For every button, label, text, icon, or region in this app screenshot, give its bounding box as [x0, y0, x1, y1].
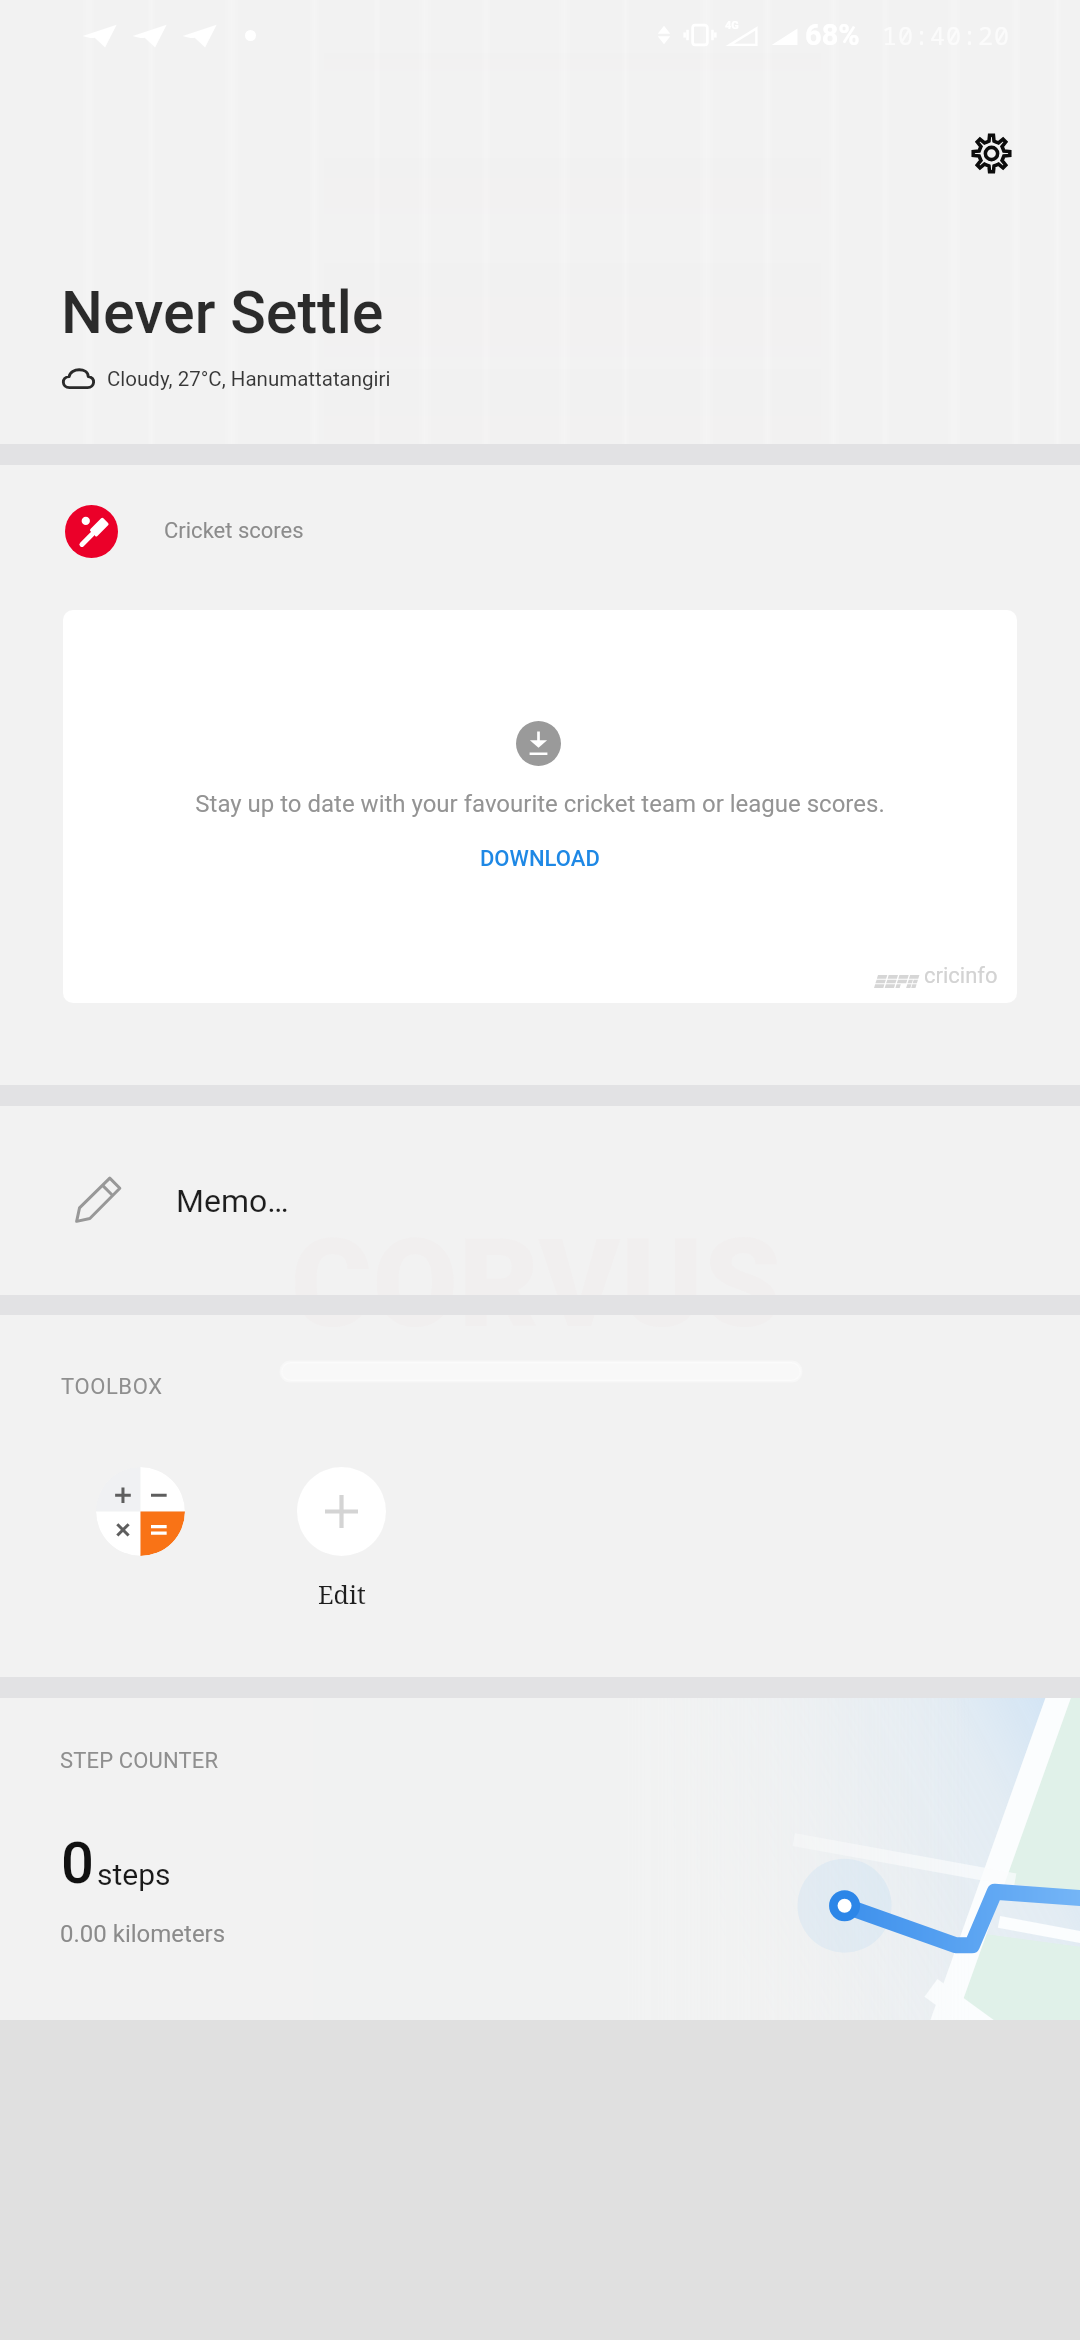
- button[interactable]: CORVUS: [0, 1106, 1080, 1295]
- staticText: STEP COUNTER: [60, 1748, 219, 1774]
- staticText: 68%: [805, 18, 860, 52]
- staticText: Memo…: [176, 1182, 289, 1220]
- button[interactable]: Edit: [297, 1467, 386, 1611]
- staticText: Stay up to date with your favourite cric…: [63, 790, 1017, 818]
- button[interactable]: DOWNLOAD: [448, 832, 632, 886]
- staticText: TOOLBOX: [61, 1374, 163, 1400]
- staticText: Cricket scores: [164, 518, 304, 544]
- staticText: Cloudy, 27°C, Hanumattatangiri: [107, 367, 391, 391]
- staticText: DOWNLOAD: [480, 846, 600, 872]
- button[interactable]: Stay up to date with your favourite cric…: [63, 610, 1017, 1003]
- staticText: Edit: [318, 1577, 366, 1611]
- staticText: 10:40:20: [882, 18, 1011, 52]
- button[interactable]: Cricket scores: [0, 465, 1080, 597]
- staticText: 0: [61, 1829, 94, 1897]
- button[interactable]: Calculator: [96, 1467, 185, 1556]
- button[interactable]: STEP COUNTER: [0, 1698, 1080, 2020]
- staticText: cricinfo: [924, 963, 998, 989]
- staticText: 4G: [725, 19, 739, 32]
- staticText: steps: [97, 1857, 171, 1892]
- staticText: Never Settle: [61, 278, 384, 347]
- staticText: 0.00 kilometers: [60, 1920, 226, 1948]
- button[interactable]: Settings: [961, 123, 1021, 183]
